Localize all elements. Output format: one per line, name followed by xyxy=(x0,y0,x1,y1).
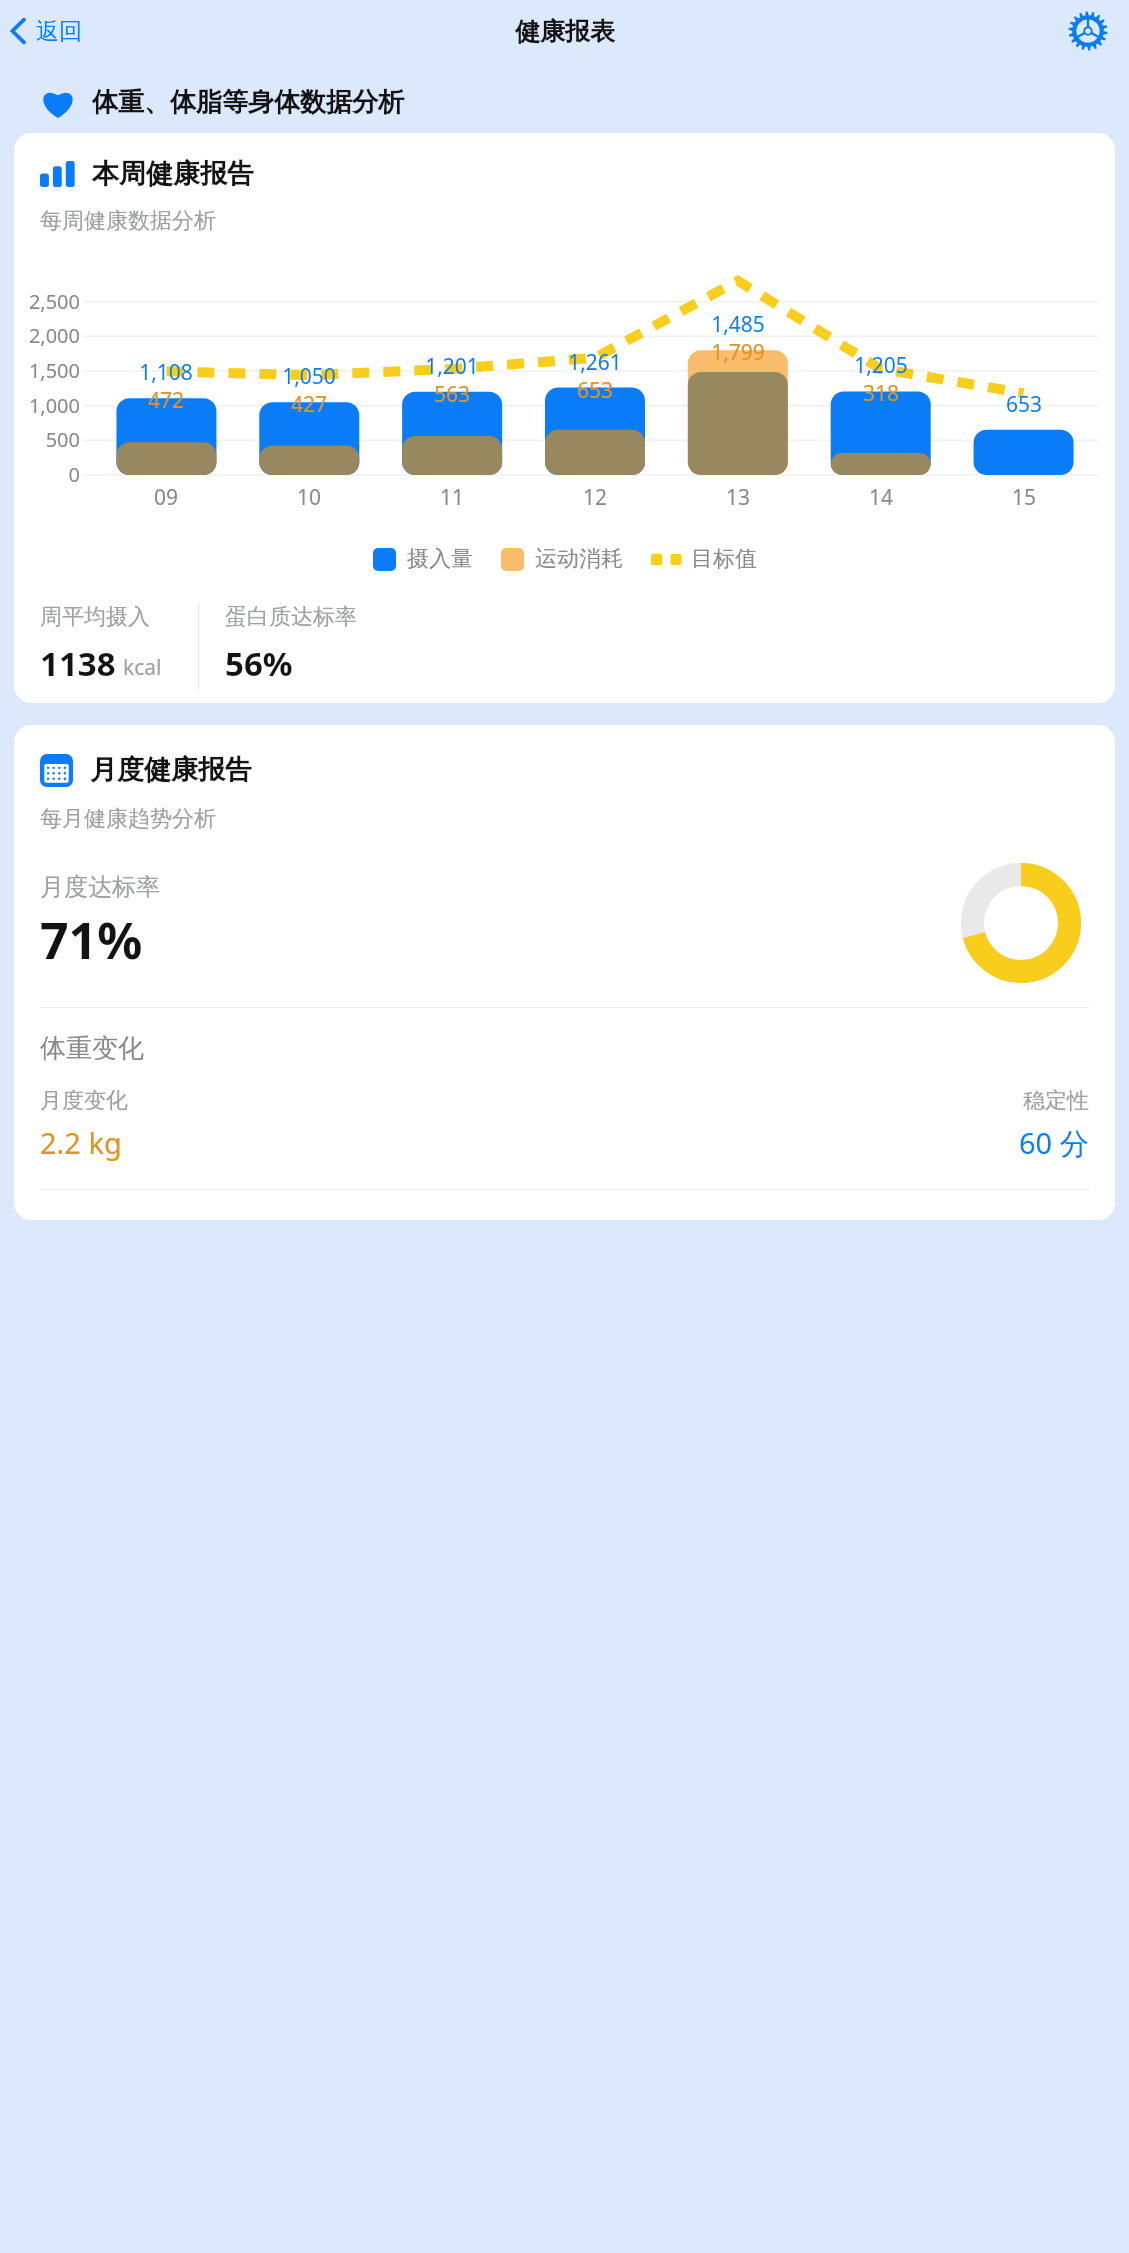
staticText: 472 xyxy=(110,386,222,415)
staticText: 15 xyxy=(984,483,1064,512)
staticText: 500 xyxy=(14,426,80,453)
staticText: 1,799 xyxy=(682,338,794,367)
staticText: 月度达标率 xyxy=(40,872,160,902)
staticText: 蛋白质达标率 xyxy=(225,603,357,631)
staticText: 1,050 xyxy=(253,362,365,391)
button[interactable]: Settings xyxy=(1064,7,1112,55)
staticText: 周平均摄入 xyxy=(40,603,150,631)
staticText: 运动消耗 xyxy=(535,545,623,573)
staticText: 0 xyxy=(14,461,80,488)
button[interactable]: 月度健康报告 xyxy=(14,725,1115,1220)
staticText: 563 xyxy=(396,380,508,409)
staticText: 1,201 xyxy=(396,352,508,381)
staticText: 1,261 xyxy=(539,348,651,377)
staticText: 60 分 xyxy=(1019,1123,1089,1163)
staticText: 653 xyxy=(968,390,1080,419)
staticText: 1,205 xyxy=(825,351,937,380)
staticText: 14 xyxy=(841,483,921,512)
staticText: 摄入量 xyxy=(407,545,473,573)
staticText: 318 xyxy=(825,379,937,408)
staticText: 1138 xyxy=(40,641,116,686)
staticText: 健康报表 xyxy=(515,16,615,47)
staticText: 月度变化 xyxy=(40,1087,128,1115)
staticText: 427 xyxy=(253,390,365,419)
staticText: 本周健康报告 xyxy=(92,157,254,191)
staticText: 2,500 xyxy=(14,288,80,315)
staticText: 71% xyxy=(40,906,143,974)
staticText: 13 xyxy=(698,483,778,512)
staticText: 11 xyxy=(412,483,492,512)
staticText: 10 xyxy=(269,483,349,512)
staticText: 体重变化 xyxy=(40,1032,144,1065)
staticText: 目标值 xyxy=(691,545,757,573)
staticText: 653 xyxy=(539,376,651,405)
staticText: 09 xyxy=(126,483,206,512)
button[interactable]: 返回 xyxy=(2,12,92,50)
staticText: 1,500 xyxy=(14,357,80,384)
staticText: 月度健康报告 xyxy=(90,753,252,787)
staticText: 56% xyxy=(225,641,293,686)
staticText: 1,108 xyxy=(110,358,222,387)
staticText: 12 xyxy=(555,483,635,512)
staticText: kcal xyxy=(123,653,162,682)
staticText: 2,000 xyxy=(14,322,80,349)
staticText: 2.2 kg xyxy=(40,1123,122,1162)
staticText: 返回 xyxy=(36,17,82,46)
staticText: 1,000 xyxy=(14,392,80,419)
staticText: 稳定性 xyxy=(1023,1087,1089,1115)
staticText: 每月健康趋势分析 xyxy=(40,805,216,833)
staticText: 体重、体脂等身体数据分析 xyxy=(92,86,404,119)
button[interactable]: 本周健康报告 xyxy=(14,133,1115,703)
staticText: 每周健康数据分析 xyxy=(40,207,216,235)
staticText: 1,485 xyxy=(682,310,794,339)
